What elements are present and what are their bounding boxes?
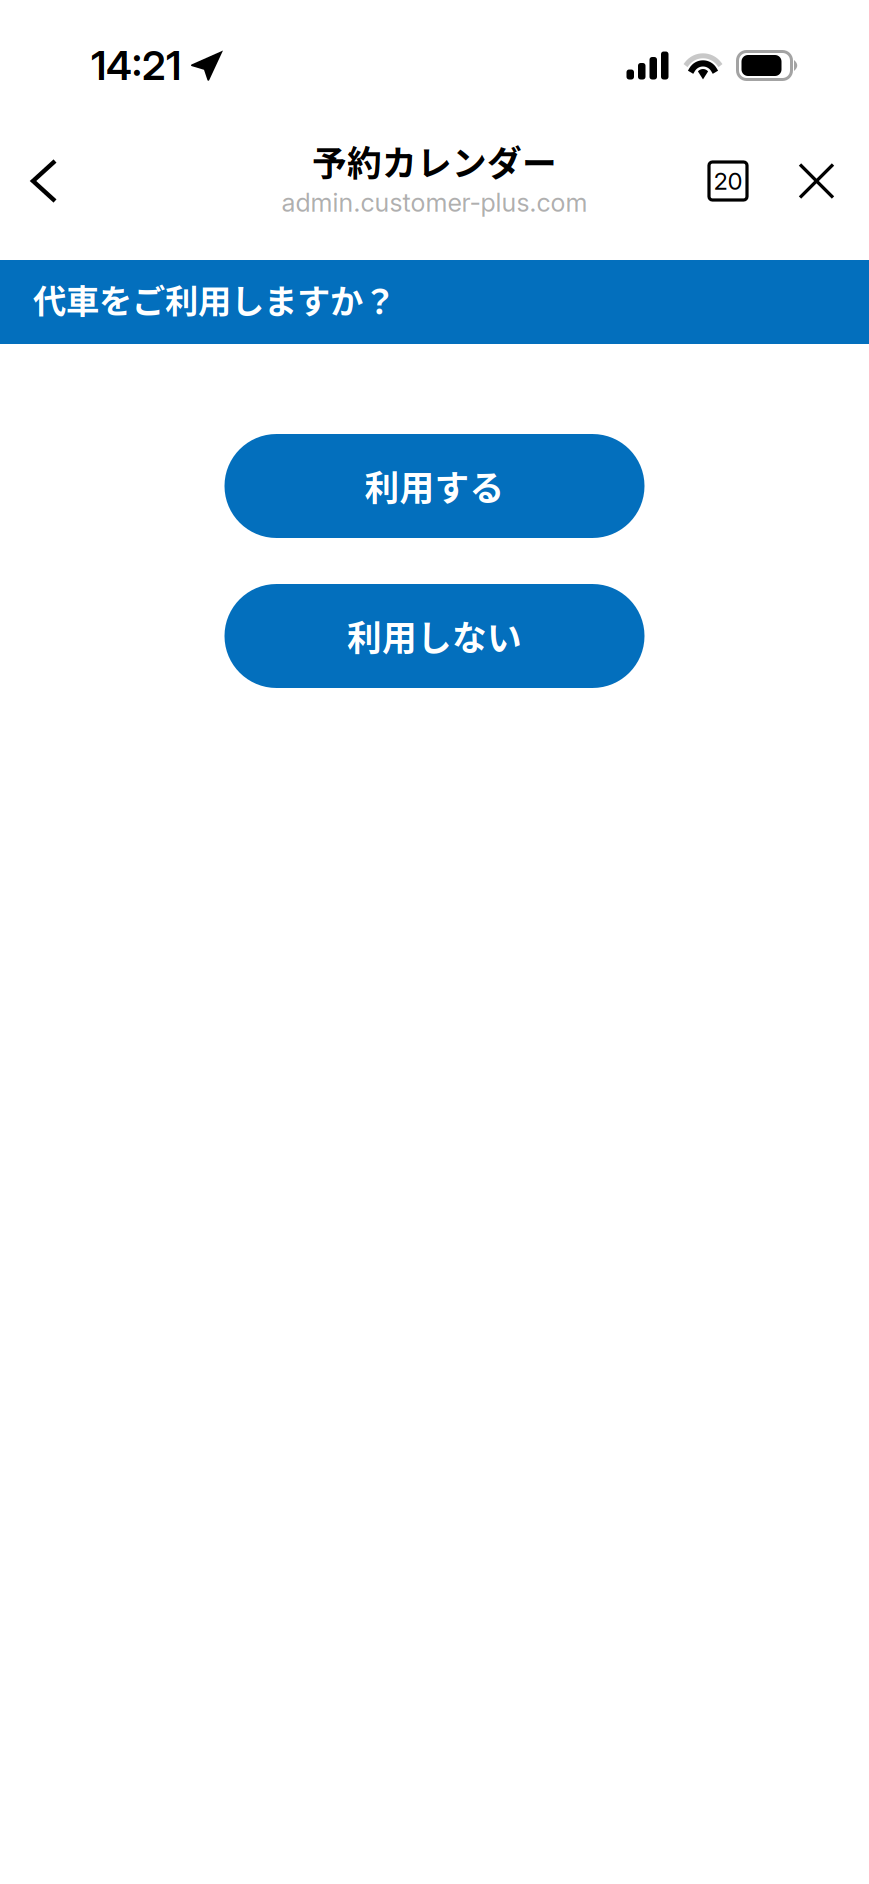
button[interactable]: Close	[773, 152, 869, 235]
staticText: 利用する	[364, 461, 504, 511]
button[interactable]: Back	[0, 152, 83, 236]
staticText: 代車をご利用しますか？	[33, 275, 396, 323]
staticText: 20	[713, 166, 742, 195]
staticText: admin.customer-plus.com	[281, 187, 587, 218]
staticText: 14:21	[91, 41, 181, 90]
button[interactable]: 利用しない	[224, 584, 644, 688]
button[interactable]: Tabs	[689, 152, 773, 236]
staticText: 予約カレンダー	[312, 136, 557, 186]
staticText: 利用しない	[347, 611, 522, 661]
button[interactable]: 利用する	[224, 434, 644, 538]
